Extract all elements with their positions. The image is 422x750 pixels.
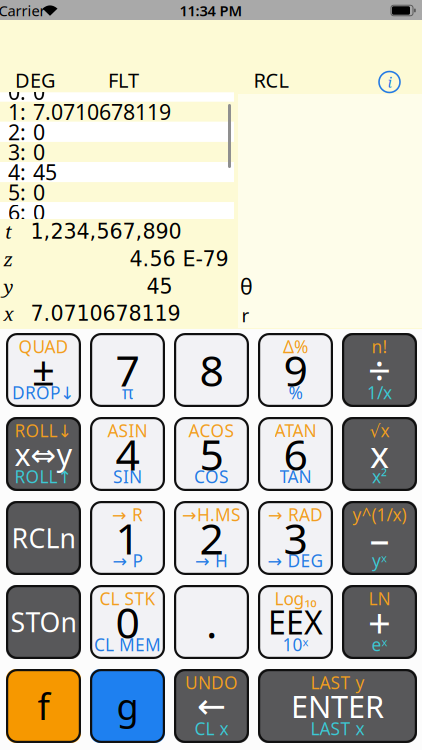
staticText: 1/x (367, 381, 392, 404)
staticText: 4 (115, 426, 139, 482)
button[interactable]: Info (377, 70, 401, 94)
staticText: 1 (115, 510, 139, 566)
staticText: CL MEM (94, 633, 161, 656)
staticText: 0 (115, 594, 139, 650)
staticText: RCLn (11, 520, 75, 556)
staticText: 5: (8, 178, 26, 206)
button[interactable]: → RAD (258, 501, 333, 575)
staticText: CL x (194, 717, 228, 740)
staticText: 9 (283, 342, 307, 398)
button[interactable]: ACOS (174, 417, 249, 491)
staticText: – (369, 511, 389, 564)
button[interactable]: LN (342, 585, 417, 659)
button[interactable]: → R (90, 501, 165, 575)
staticText: ← (197, 686, 226, 726)
staticText: Carrier (0, 1, 45, 20)
staticText: STOn (10, 604, 76, 640)
button[interactable] (90, 669, 165, 743)
button[interactable] (6, 585, 81, 659)
staticText: 7.0710678119 (30, 301, 180, 326)
button[interactable]: √x (342, 417, 417, 491)
button[interactable]: QUAD (6, 333, 81, 407)
staticText: → DEG (267, 549, 323, 572)
staticText: DEG (15, 67, 56, 93)
staticText: f (37, 682, 49, 730)
staticText: 2: (8, 118, 26, 146)
staticText (41, 503, 46, 526)
staticText (41, 671, 46, 694)
staticText: n! (371, 335, 387, 358)
staticText: + (368, 595, 391, 648)
button[interactable] (174, 585, 249, 659)
staticText: → H (195, 549, 228, 572)
button[interactable]: LAST y (258, 669, 417, 743)
button[interactable]: UNDO (174, 669, 249, 743)
staticText: x (3, 301, 13, 326)
staticText: x⇔y (14, 434, 72, 474)
staticText: z (3, 246, 13, 272)
button[interactable]: ATAN (258, 417, 333, 491)
button[interactable] (174, 333, 249, 407)
staticText: SIN (113, 465, 142, 488)
staticText: 5 (199, 426, 223, 482)
staticText (41, 717, 46, 740)
staticText: 0 (33, 178, 45, 206)
staticText: . (206, 594, 217, 650)
staticText: 3 (283, 510, 307, 566)
button[interactable]: Log₁₀ (258, 585, 333, 659)
staticText: 4: (8, 158, 26, 186)
staticText: DROP↓ (12, 381, 75, 404)
staticText (209, 381, 214, 404)
button[interactable]: Δ% (258, 333, 333, 407)
staticText: 4.56 E-79 (129, 247, 228, 271)
staticText: 6 (283, 426, 307, 482)
staticText: π (122, 381, 133, 404)
staticText: → R (112, 503, 143, 526)
staticText: θ (240, 272, 253, 301)
staticText: Δ% (283, 335, 308, 358)
button[interactable]: ASIN (90, 417, 165, 491)
staticText: 0 (33, 138, 45, 166)
staticText: x (370, 430, 389, 478)
staticText (125, 717, 130, 740)
staticText: g (116, 682, 138, 730)
button[interactable] (6, 501, 81, 575)
button[interactable]: n! (342, 333, 417, 407)
staticText: 45 (146, 274, 172, 299)
button[interactable]: ROLL↓ (6, 417, 81, 491)
button[interactable]: CL STK (90, 585, 165, 659)
staticText: eˣ (371, 633, 387, 656)
staticText: LAST y (310, 671, 364, 694)
staticText: 0 (33, 77, 45, 106)
staticText: RCL (253, 67, 288, 93)
staticText: ROLL↑ (14, 465, 72, 488)
staticText: 11:34 PM (179, 1, 242, 20)
staticText: 6: (8, 198, 26, 226)
staticText: 1: (8, 98, 26, 126)
staticText: → RAD (268, 503, 323, 526)
staticText: ROLL↓ (14, 419, 72, 442)
staticText: 10ˣ (282, 633, 308, 656)
button[interactable] (90, 333, 165, 407)
staticText: LN (368, 587, 390, 610)
staticText (125, 671, 130, 694)
button[interactable] (6, 669, 81, 743)
staticText: x² (372, 465, 387, 488)
staticText: 0: (8, 77, 26, 106)
staticText: ± (32, 343, 55, 396)
button[interactable]: y^(1/x) (342, 501, 417, 575)
staticText: ATAN (274, 419, 316, 442)
button[interactable]: →H.MS (174, 501, 249, 575)
staticText: TAN (279, 465, 311, 488)
staticText: →H.MS (182, 503, 241, 526)
staticText (209, 335, 214, 358)
staticText (125, 335, 130, 358)
staticText: % (288, 381, 302, 404)
staticText: r (241, 303, 249, 327)
staticText: ENTER (291, 686, 384, 726)
staticText: ASIN (107, 419, 147, 442)
staticText: CL STK (99, 587, 155, 610)
staticText: 1,234,567,890 (30, 219, 181, 244)
